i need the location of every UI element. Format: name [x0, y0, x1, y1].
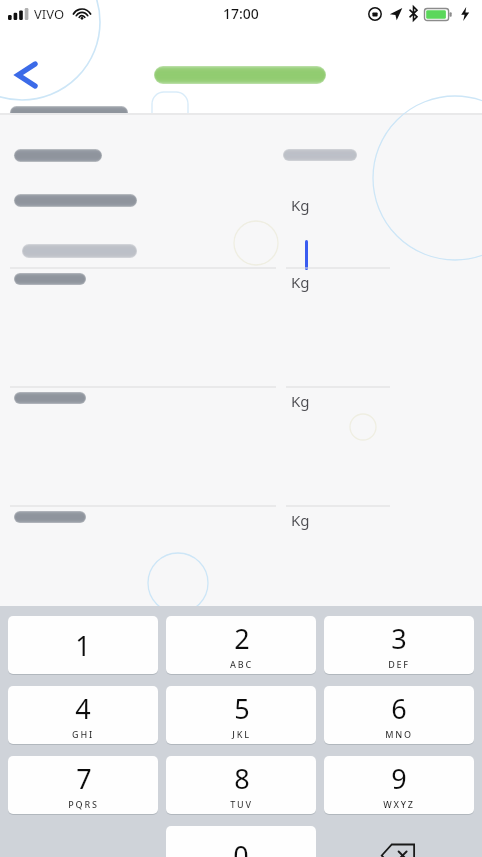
- button[interactable]: 4: [8, 686, 158, 744]
- button[interactable]: 2: [166, 616, 316, 674]
- button[interactable]: 3: [324, 616, 474, 674]
- staticText: Kg: [291, 272, 310, 292]
- button[interactable]: 7: [8, 756, 158, 814]
- button[interactable]: Kg: [0, 141, 482, 269]
- button[interactable]: Kg: [0, 507, 482, 567]
- button[interactable]: Kg: [0, 269, 482, 388]
- staticText: MNO: [385, 728, 413, 740]
- button[interactable]: 1: [8, 616, 158, 674]
- button[interactable]: 9: [324, 756, 474, 814]
- staticText: WXYZ: [383, 798, 415, 810]
- staticText: ABC: [230, 658, 253, 670]
- staticText: VIVO: [34, 5, 65, 23]
- staticText: Kg: [291, 195, 310, 215]
- button[interactable]: 5: [166, 686, 316, 744]
- staticText: 0: [233, 837, 249, 857]
- button[interactable]: Delete: [324, 826, 474, 857]
- button[interactable]: Kg: [0, 388, 482, 507]
- staticText: Kg: [291, 391, 310, 411]
- staticText: 4: [75, 690, 91, 727]
- staticText: 17:00: [223, 4, 259, 23]
- staticText: JKL: [232, 728, 251, 740]
- button[interactable]: Back: [2, 52, 48, 98]
- button[interactable]: 0: [166, 826, 316, 857]
- staticText: 2: [234, 620, 250, 657]
- staticText: 9: [391, 760, 407, 797]
- staticText: 3: [391, 620, 407, 657]
- staticText: PQRS: [68, 798, 99, 810]
- staticText: 8: [234, 760, 250, 797]
- staticText: 7: [76, 760, 92, 797]
- staticText: 5: [234, 690, 250, 727]
- staticText: 6: [391, 690, 407, 727]
- staticText: 1: [75, 627, 91, 664]
- staticText: DEF: [388, 658, 410, 670]
- button[interactable]: 8: [166, 756, 316, 814]
- staticText: TUV: [230, 798, 253, 810]
- button[interactable]: 6: [324, 686, 474, 744]
- staticText: Kg: [291, 510, 310, 530]
- staticText: GHI: [72, 728, 94, 740]
